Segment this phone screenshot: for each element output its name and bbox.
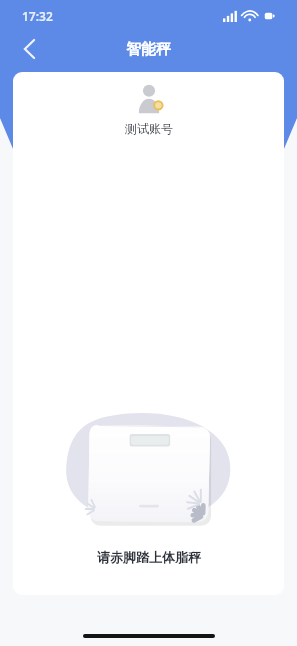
staticText: 智能秤 [126,40,171,59]
staticText: 17:32 [22,8,53,24]
button[interactable]: Account avatar [132,80,166,114]
button[interactable]: 请赤脚踏上体脂秤 [97,549,201,565]
button[interactable]: Back [12,32,46,66]
staticText: 测试账号 [125,121,173,136]
